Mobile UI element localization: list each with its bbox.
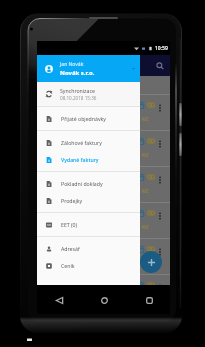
button[interactable]: Zálohové faktury	[37, 134, 140, 151]
button[interactable]: 0 Kč	[37, 238, 170, 274]
staticText: 0 Kč	[137, 259, 149, 267]
staticText: Jan Novák	[60, 61, 84, 68]
button[interactable]: More options	[155, 247, 165, 257]
button[interactable]: More options	[155, 139, 165, 149]
button[interactable]: Back	[51, 292, 67, 308]
staticText: EET (0)	[61, 221, 78, 228]
button[interactable]: Filter	[128, 58, 144, 74]
staticText: Adresář	[61, 245, 81, 252]
staticText: 0 Kč	[137, 187, 149, 195]
button[interactable]: 0 Kč	[37, 274, 170, 285]
button[interactable]: More options	[155, 283, 165, 293]
staticText: 08.10.2018 15:36	[60, 95, 97, 101]
button[interactable]: Vydané faktury	[37, 151, 140, 168]
button[interactable]: Search	[152, 58, 168, 74]
button[interactable]: Synchronizace	[37, 82, 140, 106]
button[interactable]: 0 Kč	[37, 94, 170, 130]
button[interactable]: More options	[155, 175, 165, 185]
button[interactable]: 0 Kč	[37, 130, 170, 166]
button[interactable]: Recent apps	[141, 292, 157, 308]
staticText: 0 Kč	[137, 151, 149, 159]
button[interactable]: Ceník	[37, 257, 140, 274]
button[interactable]: 0 Kč	[37, 166, 170, 202]
button[interactable]: Pokladní doklady	[37, 175, 140, 192]
staticText: Přijaté objednávky	[61, 115, 106, 122]
button[interactable]: 0 Kč	[37, 202, 170, 238]
button[interactable]: More options	[155, 103, 165, 113]
staticText: Ceník	[61, 262, 75, 269]
staticText: Zálohové faktury	[61, 139, 102, 146]
button[interactable]: Přijaté objednávky	[37, 110, 140, 127]
button[interactable]: Home	[96, 292, 112, 308]
staticText: 0 Kč	[137, 295, 149, 303]
staticText: Vydané faktury	[61, 156, 99, 163]
staticText: 0 Kč	[137, 115, 149, 123]
staticText: Novák s.r.o.	[60, 69, 95, 77]
button[interactable]: Add	[140, 251, 162, 273]
staticText: Synchronizace	[60, 87, 95, 94]
button[interactable]: Adresář	[37, 240, 140, 257]
button[interactable]: More options	[155, 211, 165, 221]
staticText: Prodejky	[61, 197, 83, 204]
staticText: 0 Kč	[137, 223, 149, 231]
button[interactable]: Prodejky	[37, 192, 140, 209]
button[interactable]: Jan Novák	[37, 55, 140, 82]
staticText: Pokladní doklady	[61, 180, 103, 187]
staticText: 10:59	[155, 45, 168, 52]
button[interactable]: EET (0)	[37, 216, 140, 233]
